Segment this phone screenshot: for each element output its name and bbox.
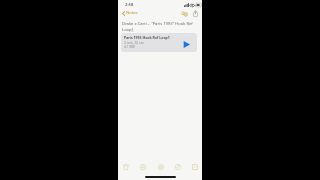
- staticText: Paris 1993 Hook Ref Loop1: [124, 35, 170, 40]
- staticText: 2:58: [125, 2, 134, 8]
- staticText: 2 min, 32 sec: [124, 40, 145, 44]
- staticText: Notes: [126, 10, 138, 16]
- button[interactable]: Notes: [121, 10, 139, 19]
- button[interactable]: Play: [182, 40, 190, 48]
- button[interactable]: Markup: [180, 9, 189, 18]
- button[interactable]: Camera: [155, 162, 166, 171]
- staticText: Drake x Carti – "Paris 1993" Hook Ref Lo…: [122, 21, 193, 32]
- button[interactable]: Share: [191, 9, 200, 18]
- button[interactable]: Paris 1993 Hook Ref Loop1: [121, 33, 197, 52]
- button[interactable]: Checklist: [137, 162, 148, 171]
- button[interactable]: Compose: [189, 162, 200, 171]
- button[interactable]: Markup: [172, 162, 183, 171]
- button[interactable]: Delete: [120, 162, 131, 171]
- staticText: 4.1 MB: [124, 44, 135, 48]
